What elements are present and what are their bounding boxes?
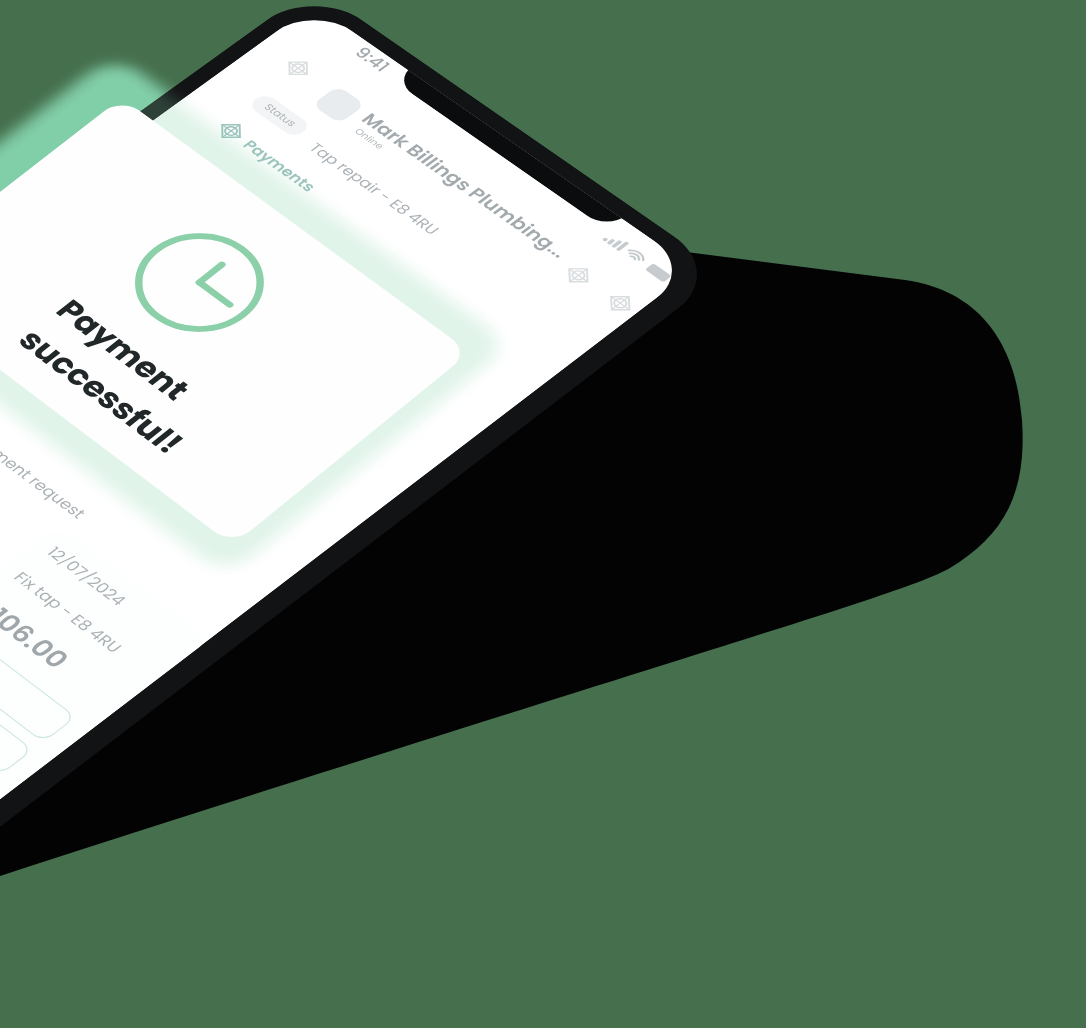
staticText: 9:41 bbox=[349, 42, 397, 76]
button[interactable] bbox=[0, 623, 77, 743]
staticText: Payment successful! bbox=[7, 291, 232, 463]
staticText: Status bbox=[260, 101, 300, 130]
button[interactable]: Payments bbox=[212, 117, 322, 196]
staticText: Tap repair - E8 4RU bbox=[304, 139, 445, 238]
staticText: Mark Billings Plumbing... bbox=[356, 108, 575, 262]
staticText: 12/07/2024 bbox=[42, 542, 132, 610]
staticText: £106.00 bbox=[0, 591, 78, 675]
other: Payment pending clock bbox=[108, 213, 291, 353]
staticText: Fix tap - E8 4RU bbox=[9, 567, 129, 657]
staticText: Online bbox=[351, 126, 387, 152]
button[interactable]: Status bbox=[247, 92, 312, 139]
staticText: Payments bbox=[238, 136, 322, 195]
other: Signal, wifi and battery bbox=[596, 231, 677, 288]
staticText: Payment request bbox=[0, 426, 92, 523]
button[interactable] bbox=[0, 655, 34, 776]
button[interactable]: Payment successful! bbox=[0, 97, 470, 545]
button[interactable]: 12/07/2024 bbox=[0, 526, 210, 818]
